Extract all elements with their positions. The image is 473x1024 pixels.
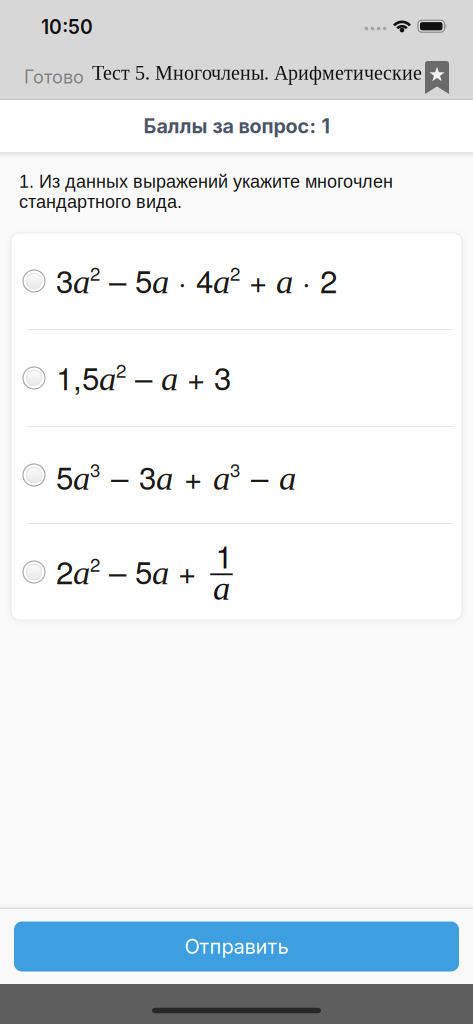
button[interactable]: 2a2 – 5a + bbox=[11, 524, 462, 620]
button[interactable]: Готово bbox=[24, 66, 84, 88]
staticText: Отправить bbox=[184, 934, 288, 959]
staticText: a bbox=[213, 569, 230, 607]
staticText: 3a2 – 5a · 4a2 + a · 2 bbox=[56, 255, 337, 302]
staticText: Готово bbox=[24, 66, 84, 88]
staticText: Баллы за вопрос: 1 bbox=[143, 114, 329, 138]
button[interactable]: 1,5a2 – a + 3 bbox=[11, 330, 462, 426]
staticText: 1 bbox=[215, 533, 232, 577]
staticText: 1,5a2 – a + 3 bbox=[56, 352, 231, 399]
button[interactable]: Отправить bbox=[14, 921, 459, 971]
staticText: Тест 5. Многочлены. Арифметические дейст… bbox=[92, 62, 473, 84]
staticText: 10:50 bbox=[41, 15, 93, 39]
staticText: 1. Из данных выражений укажите многочлен… bbox=[19, 171, 393, 212]
button[interactable]: 3a2 – 5a · 4a2 + a · 2 bbox=[11, 233, 462, 329]
staticText: 5a3 – 3a + a3 – a bbox=[56, 445, 296, 500]
staticText: 2a2 – 5a + bbox=[56, 546, 205, 593]
button[interactable]: 5a3 – 3a + a3 – a bbox=[11, 427, 462, 523]
button[interactable]: Bookmark bbox=[425, 61, 449, 94]
